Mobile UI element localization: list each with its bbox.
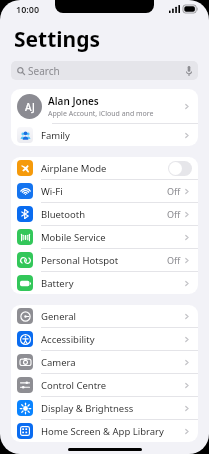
- staticText: Off: [167, 254, 181, 266]
- staticText: Home Screen & App Library: [41, 425, 183, 438]
- staticText: Display & Brightness: [41, 402, 183, 415]
- button[interactable]: Airplane Mode: [11, 157, 198, 179]
- button[interactable]: Personal Hotspot: [11, 249, 198, 271]
- button[interactable]: Accessibility: [11, 328, 198, 350]
- staticText: 10:00: [16, 3, 40, 15]
- staticText: Personal Hotspot: [41, 254, 167, 267]
- staticText: General: [41, 310, 183, 323]
- button[interactable]: Airplane Mode toggle: [168, 161, 192, 176]
- button[interactable]: Home Screen & App Library: [11, 420, 198, 442]
- button[interactable]: Bluetooth: [11, 203, 198, 225]
- staticText: Wi-Fi: [41, 185, 167, 198]
- staticText: Airplane Mode: [41, 162, 168, 175]
- staticText: Settings: [14, 25, 101, 54]
- staticText: Accessibility: [41, 333, 183, 346]
- staticText: Alan Jones: [48, 94, 99, 108]
- staticText: Bluetooth: [41, 208, 167, 221]
- button[interactable]: Battery: [11, 272, 198, 294]
- staticText: Apple Account, iCloud and more: [48, 109, 154, 119]
- button[interactable]: Search: [11, 61, 198, 80]
- staticText: AJ: [25, 100, 35, 114]
- staticText: Off: [167, 185, 181, 197]
- button[interactable]: Control Centre: [11, 374, 198, 396]
- button[interactable]: Wi-Fi: [11, 180, 198, 202]
- button[interactable]: Camera: [11, 351, 198, 373]
- staticText: Search: [28, 64, 60, 78]
- button[interactable]: General: [11, 305, 198, 327]
- staticText: Camera: [41, 356, 183, 369]
- button[interactable]: Family: [11, 124, 198, 146]
- button[interactable]: Display & Brightness: [11, 397, 198, 419]
- button[interactable]: Mobile Service: [11, 226, 198, 248]
- staticText: Family: [41, 129, 183, 142]
- staticText: Off: [167, 208, 181, 220]
- staticText: Mobile Service: [41, 231, 183, 244]
- staticText: Control Centre: [41, 379, 183, 392]
- button[interactable]: AJ: [11, 89, 198, 123]
- staticText: Battery: [41, 277, 183, 290]
